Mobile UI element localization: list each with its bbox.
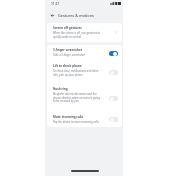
staticText: Take a 3-finger screenshot <box>53 53 86 57</box>
staticText: Lift to check phone <box>53 64 82 68</box>
staticText: 3-finger screenshot <box>53 48 82 52</box>
button[interactable]: Hush ring <box>47 84 122 112</box>
button[interactable]: Switch off <box>109 117 118 122</box>
button[interactable]: Switch off <box>109 96 118 101</box>
button[interactable]: Screen off gestures <box>47 23 122 42</box>
staticText: 11:27 <box>51 2 60 6</box>
staticText: Screen off gestures <box>53 26 82 30</box>
staticText: Ringtone volume decreases and the phone … <box>53 92 101 103</box>
staticText: When the screen is off, use gestures to … <box>53 31 101 39</box>
button[interactable]: Lift to check phone <box>47 61 122 84</box>
staticText: Mute incoming calls <box>53 115 84 119</box>
staticText: Gestures & motions <box>58 13 94 18</box>
staticText: Flip the device to mute incoming calls <box>53 120 99 124</box>
button[interactable]: Switch on <box>109 51 118 56</box>
staticText: To check time, notifications and other i… <box>53 69 99 77</box>
button[interactable]: Back <box>48 11 57 20</box>
button[interactable]: Switch off <box>109 70 118 75</box>
button[interactable]: 3-finger screenshot <box>47 45 122 61</box>
button[interactable]: Mute incoming calls <box>47 112 122 127</box>
staticText: Hush ring <box>53 87 68 91</box>
